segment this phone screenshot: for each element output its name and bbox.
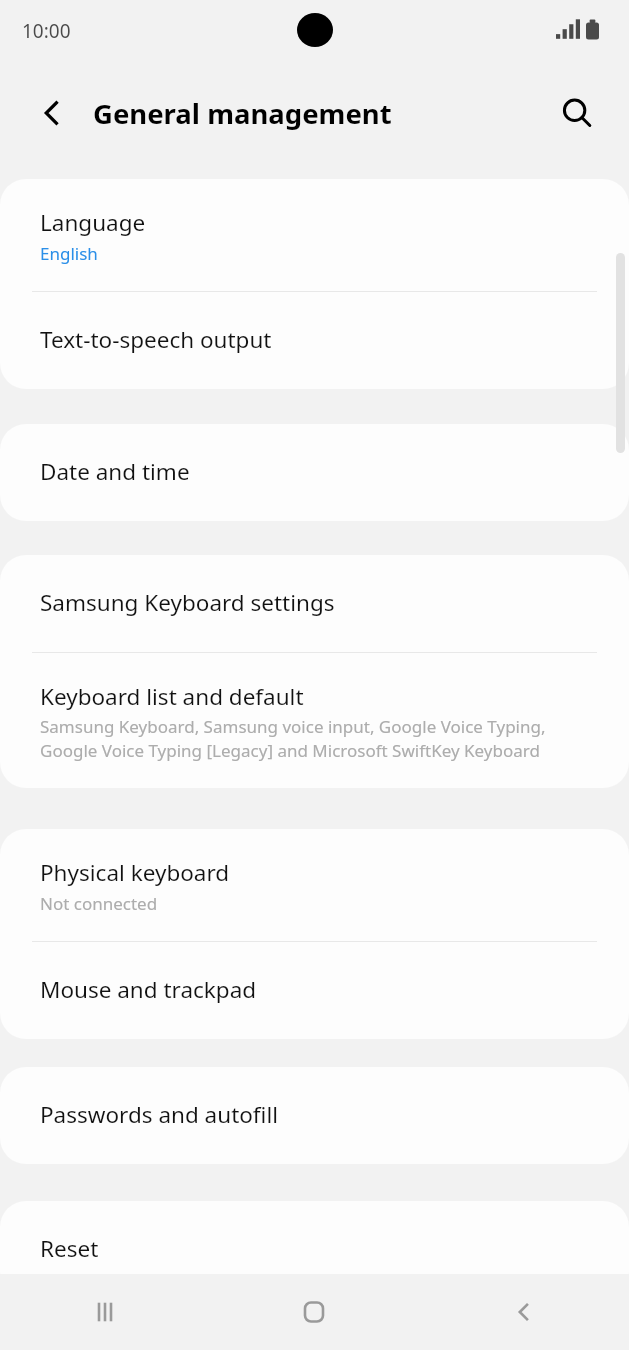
staticText: Language	[40, 207, 146, 238]
button[interactable]: Reset	[0, 1201, 629, 1298]
staticText: English	[40, 242, 98, 265]
staticText: Keyboard list and default	[40, 681, 304, 712]
button[interactable]: Back	[26, 87, 78, 139]
button[interactable]: Samsung Keyboard settings	[0, 555, 629, 652]
button[interactable]: Physical keyboard	[0, 829, 629, 941]
button[interactable]: Passwords and autofill	[0, 1067, 629, 1164]
staticText: Not connected	[40, 892, 158, 915]
staticText: Physical keyboard	[40, 857, 230, 888]
button[interactable]: Keyboard list and default	[0, 653, 629, 788]
staticText: Samsung Keyboard, Samsung voice input, G…	[40, 715, 605, 762]
button[interactable]: Language	[0, 179, 629, 291]
button[interactable]: Mouse and trackpad	[0, 942, 629, 1039]
staticText: Mouse and trackpad	[40, 974, 257, 1005]
button[interactable]: Home	[209, 1274, 419, 1350]
staticText: 10:00	[22, 18, 71, 44]
staticText: Date and time	[40, 456, 190, 487]
staticText: Reset	[40, 1233, 99, 1264]
button[interactable]: Recent apps	[0, 1274, 209, 1350]
button[interactable]: Back	[419, 1274, 629, 1350]
staticText: Text-to-speech output	[40, 324, 272, 355]
staticText: Passwords and autofill	[40, 1099, 279, 1130]
button[interactable]: Date and time	[0, 424, 629, 521]
button[interactable]: Search	[551, 87, 603, 139]
button[interactable]: Text-to-speech output	[0, 292, 629, 389]
staticText: General management	[93, 95, 392, 132]
staticText: Samsung Keyboard settings	[40, 587, 335, 618]
